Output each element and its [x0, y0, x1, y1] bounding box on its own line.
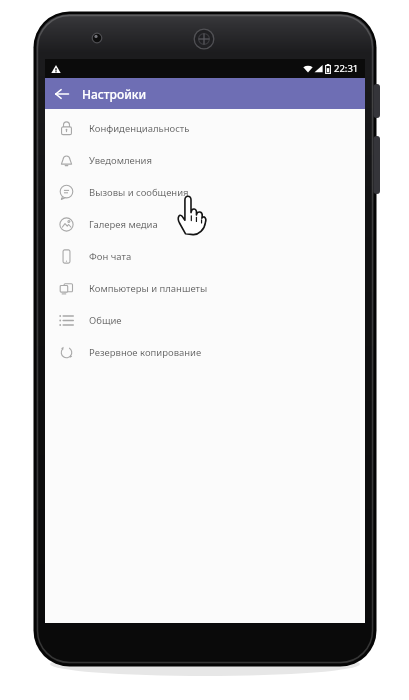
button[interactable]: Вызовы и сообщения	[45, 176, 365, 208]
staticText: Конфиденциальность	[89, 122, 190, 135]
button[interactable]: Общие	[45, 304, 365, 336]
button[interactable]: Компьютеры и планшеты	[45, 272, 365, 304]
staticText: Настройки	[82, 86, 147, 102]
button[interactable]: Конфиденциальность	[45, 112, 365, 144]
button[interactable]: Галерея медиа	[45, 208, 365, 240]
staticText: Общие	[89, 314, 122, 327]
button[interactable]: Back	[45, 78, 78, 109]
staticText: Резервное копирование	[89, 346, 202, 359]
staticText: Уведомления	[89, 154, 152, 167]
staticText: 22:31	[334, 62, 359, 75]
staticText: Вызовы и сообщения	[89, 186, 189, 199]
staticText: Компьютеры и планшеты	[89, 282, 208, 295]
button[interactable]: Фон чата	[45, 240, 365, 272]
staticText: Галерея медиа	[89, 218, 158, 231]
button[interactable]: Резервное копирование	[45, 336, 365, 368]
button[interactable]: Уведомления	[45, 144, 365, 176]
staticText: Фон чата	[89, 250, 132, 263]
